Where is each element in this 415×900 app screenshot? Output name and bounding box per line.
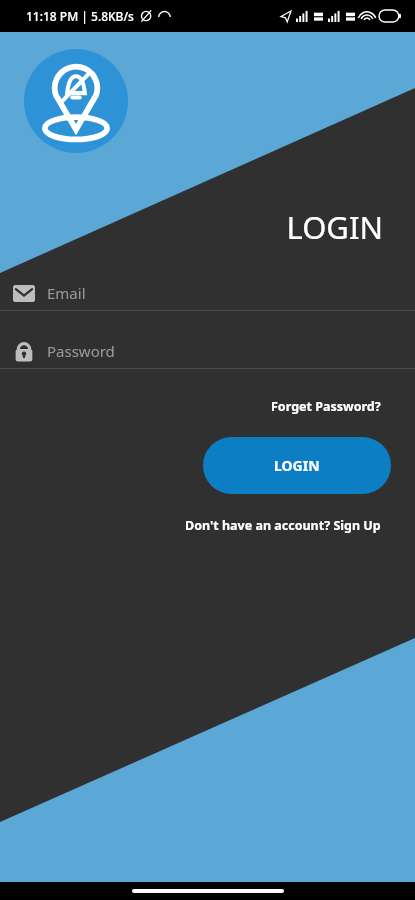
button[interactable]: Email (0, 276, 415, 310)
staticText: Don't have an account? Sign Up (185, 517, 381, 534)
button[interactable]: LOGIN (203, 437, 391, 494)
staticText: 11:18 PM | 5.8KB/s (26, 8, 134, 24)
staticText: LOGIN (0, 206, 383, 248)
staticText: LOGIN (274, 456, 320, 475)
button[interactable]: Don't have an account? Sign Up (181, 513, 385, 538)
button[interactable]: Forget Password? (267, 394, 385, 419)
staticText: Password (47, 341, 115, 361)
staticText: Email (47, 283, 86, 303)
staticText: Forget Password? (271, 398, 381, 415)
button[interactable]: Password (0, 334, 415, 368)
